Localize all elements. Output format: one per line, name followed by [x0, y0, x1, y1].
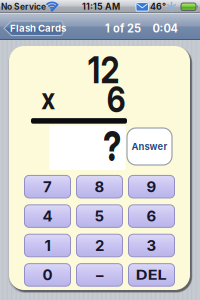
button[interactable]: DEL — [128, 264, 174, 286]
staticText: 2 — [95, 236, 104, 255]
staticText: 1 — [44, 236, 50, 255]
staticText: 0 — [42, 266, 52, 284]
staticText: 4 — [42, 207, 52, 225]
staticText: 7 — [43, 178, 52, 196]
staticText: 6 — [105, 78, 127, 121]
staticText: 46° — [150, 1, 166, 12]
button[interactable]: 5 — [76, 205, 122, 227]
staticText: ? — [100, 121, 124, 171]
staticText: 5 — [94, 207, 104, 225]
staticText: DEL — [138, 267, 164, 283]
staticText: 1 of 25 — [105, 22, 141, 35]
staticText: x — [40, 81, 56, 116]
button[interactable]: 4 — [24, 205, 70, 227]
button[interactable]: – — [76, 264, 122, 286]
button[interactable]: 8 — [76, 175, 122, 198]
staticText: 11:15 AM — [82, 1, 120, 12]
button[interactable]: Flash Cards — [3, 20, 63, 36]
button[interactable]: 2 — [76, 234, 122, 257]
staticText: 0:04 — [152, 22, 177, 35]
staticText: 9 — [146, 178, 156, 196]
button[interactable]: 9 — [128, 175, 174, 198]
staticText: 8 — [94, 178, 104, 196]
button[interactable]: Answer — [127, 128, 172, 165]
staticText: 12 — [85, 48, 122, 92]
staticText: – — [96, 266, 103, 284]
staticText: 3 — [146, 236, 156, 255]
button[interactable]: 1 — [24, 234, 70, 257]
staticText: 6 — [146, 207, 156, 225]
staticText: No Service — [1, 1, 46, 12]
staticText: Flash Cards — [10, 22, 66, 34]
button[interactable]: 6 — [128, 205, 174, 227]
staticText: Answer — [131, 141, 167, 152]
button[interactable]: 7 — [24, 175, 70, 198]
button[interactable]: 0 — [24, 264, 70, 286]
button[interactable]: 3 — [128, 234, 174, 257]
